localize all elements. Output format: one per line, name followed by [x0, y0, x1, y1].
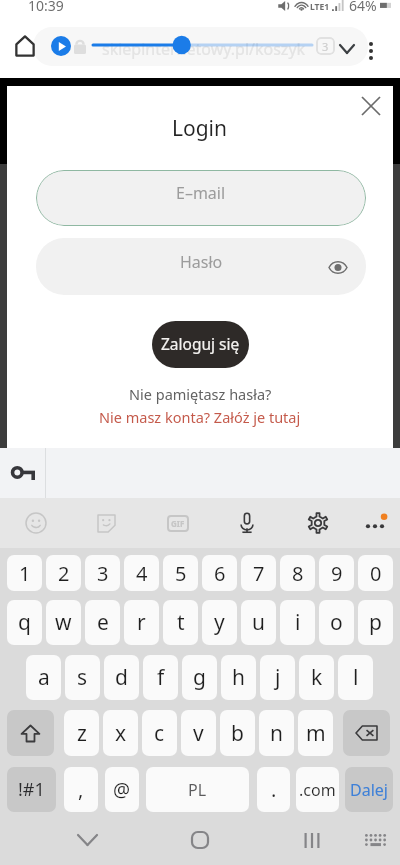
- button[interactable]: .com: [296, 767, 339, 812]
- button[interactable]: Voice input: [224, 498, 270, 548]
- button[interactable]: j: [260, 655, 295, 700]
- staticText: j: [275, 663, 281, 692]
- staticText: 64%: [349, 0, 377, 15]
- button[interactable]: E–mail: [36, 170, 366, 226]
- button[interactable]: v: [181, 710, 216, 756]
- button[interactable]: Stickers: [83, 498, 129, 548]
- button[interactable]: !#1: [7, 767, 56, 812]
- button[interactable]: Nie masz konta? Załóż je tutaj: [99, 407, 301, 427]
- button[interactable]: r: [124, 600, 159, 645]
- staticText: ,: [78, 776, 84, 803]
- button[interactable]: Recents: [289, 815, 335, 865]
- button[interactable]: [343, 710, 390, 756]
- button[interactable]: 4: [124, 555, 159, 591]
- staticText: u: [252, 608, 265, 637]
- staticText: .com: [299, 779, 336, 801]
- staticText: 3: [322, 39, 329, 54]
- button[interactable]: GIF: [155, 498, 201, 548]
- staticText: .: [271, 776, 277, 803]
- staticText: Hasło: [180, 251, 223, 273]
- button[interactable]: Close: [355, 90, 387, 122]
- button[interactable]: Hasło: [36, 238, 366, 295]
- button[interactable]: i: [280, 600, 315, 645]
- button[interactable]: 6: [202, 555, 237, 591]
- button[interactable]: Play: [51, 36, 71, 56]
- button[interactable]: 5: [163, 555, 198, 591]
- button[interactable]: 2: [46, 555, 81, 591]
- button[interactable]: p: [358, 600, 393, 645]
- staticText: PL: [188, 779, 207, 801]
- button[interactable]: Settings: [295, 498, 341, 548]
- button[interactable]: Password manager: [0, 448, 45, 498]
- button[interactable]: g: [182, 655, 217, 700]
- button[interactable]: m: [298, 710, 333, 756]
- staticText: g: [193, 663, 206, 692]
- staticText: 0: [370, 560, 382, 587]
- button[interactable]: a: [26, 655, 61, 700]
- button[interactable]: [7, 710, 54, 756]
- button[interactable]: 9: [319, 555, 354, 591]
- button[interactable]: Hide keyboard: [64, 815, 110, 865]
- button[interactable]: PL: [146, 767, 249, 812]
- staticText: l: [353, 663, 359, 692]
- staticText: t: [177, 608, 185, 637]
- button[interactable]: c: [142, 710, 177, 756]
- button[interactable]: More: [352, 498, 398, 548]
- button[interactable]: Home: [3, 24, 47, 68]
- button[interactable]: Expand: [325, 27, 369, 71]
- button[interactable]: More options: [349, 29, 393, 73]
- staticText: 1: [19, 560, 31, 587]
- button[interactable]: w: [46, 600, 81, 645]
- button[interactable]: @: [105, 767, 139, 812]
- staticText: Zaloguj się: [161, 333, 240, 354]
- staticText: 4: [136, 560, 148, 587]
- staticText: m: [306, 719, 326, 748]
- button[interactable]: 1: [7, 555, 42, 591]
- staticText: f: [157, 663, 165, 692]
- button[interactable]: 3: [316, 37, 335, 55]
- button[interactable]: Home: [177, 815, 223, 865]
- button[interactable]: Show password: [324, 253, 352, 281]
- staticText: y: [214, 608, 225, 637]
- button[interactable]: b: [220, 710, 255, 756]
- staticText: Dalej: [350, 779, 388, 801]
- staticText: i: [295, 608, 301, 637]
- button[interactable]: o: [319, 600, 354, 645]
- staticText: E–mail: [176, 182, 226, 204]
- button[interactable]: 8: [280, 555, 315, 591]
- staticText: 8: [292, 560, 304, 587]
- staticText: p: [369, 608, 382, 637]
- button[interactable]: Zaloguj się: [152, 321, 249, 368]
- button[interactable]: Keyboard layout: [352, 815, 398, 865]
- button[interactable]: Nie pamiętasz hasła?: [129, 384, 272, 404]
- button[interactable]: 3: [85, 555, 120, 591]
- button[interactable]: q: [7, 600, 42, 645]
- button[interactable]: 7: [241, 555, 276, 591]
- button[interactable]: l: [338, 655, 373, 700]
- staticText: v: [193, 719, 204, 748]
- staticText: z: [77, 719, 87, 748]
- button[interactable]: z: [64, 710, 99, 756]
- button[interactable]: .: [257, 767, 290, 812]
- button[interactable]: d: [104, 655, 139, 700]
- button[interactable]: e: [85, 600, 120, 645]
- button[interactable]: x: [103, 710, 138, 756]
- staticText: k: [311, 663, 323, 692]
- button[interactable]: Emoji: [13, 498, 59, 548]
- button[interactable]: h: [221, 655, 256, 700]
- staticText: w: [55, 608, 72, 637]
- button[interactable]: t: [163, 600, 198, 645]
- button[interactable]: f: [143, 655, 178, 700]
- staticText: 5: [175, 560, 187, 587]
- button[interactable]: n: [259, 710, 294, 756]
- button[interactable]: y: [202, 600, 237, 645]
- button[interactable]: 0: [358, 555, 393, 591]
- button[interactable]: s: [65, 655, 100, 700]
- staticText: c: [154, 719, 165, 748]
- staticText: 3: [97, 560, 109, 587]
- button[interactable]: Dalej: [345, 767, 393, 812]
- button[interactable]: u: [241, 600, 276, 645]
- button[interactable]: k: [299, 655, 334, 700]
- staticText: s: [77, 663, 88, 692]
- button[interactable]: ,: [64, 767, 98, 812]
